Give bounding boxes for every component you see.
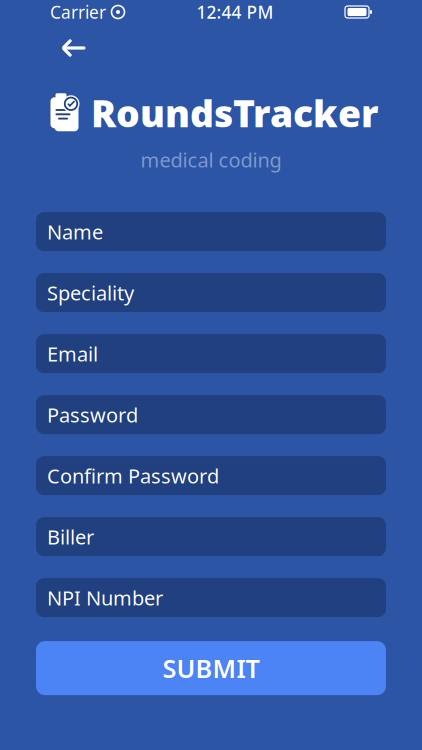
staticText: NPI Number	[47, 584, 163, 611]
staticText: Email	[47, 340, 98, 367]
staticText: RoundsTracker	[91, 88, 379, 138]
staticText: 12:44 PM	[196, 0, 273, 23]
staticText: Speciality	[47, 279, 134, 306]
button[interactable]: Back	[48, 30, 100, 66]
button[interactable]: Biller	[36, 517, 386, 556]
button[interactable]: Name	[36, 212, 386, 251]
staticText: Carrier	[50, 0, 106, 23]
staticText: Confirm Password	[47, 462, 219, 489]
button[interactable]: Speciality	[36, 273, 386, 312]
staticText: medical coding	[140, 147, 281, 173]
button[interactable]: NPI Number	[36, 578, 386, 617]
staticText: Password	[47, 401, 138, 428]
staticText: Name	[47, 218, 103, 245]
button[interactable]: Confirm Password	[36, 456, 386, 495]
button[interactable]: Password	[36, 395, 386, 434]
button[interactable]: SUBMIT	[36, 641, 386, 695]
staticText: Biller	[47, 523, 94, 550]
staticText: SUBMIT	[162, 651, 259, 685]
button[interactable]: Email	[36, 334, 386, 373]
